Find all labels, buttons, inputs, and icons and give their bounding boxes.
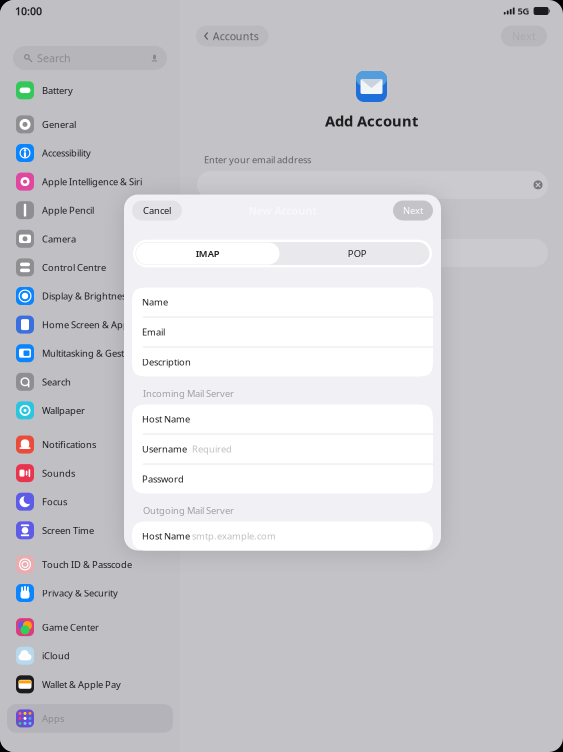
- staticText: Apps: [42, 712, 64, 725]
- button[interactable]: Display & Brightness: [7, 282, 173, 310]
- staticText: Display & Brightness: [42, 290, 130, 302]
- staticText: Search: [37, 51, 71, 65]
- button[interactable]: Next: [393, 200, 433, 220]
- button[interactable]: Apps: [7, 704, 173, 733]
- staticText: Wallet & Apple Pay: [42, 678, 121, 690]
- button[interactable]: Multitasking & Gestures: [7, 339, 173, 367]
- staticText: General: [42, 118, 76, 131]
- staticText: Email: [142, 326, 165, 338]
- staticText: Screen Time: [42, 524, 94, 536]
- button[interactable]: Wallpaper: [7, 396, 173, 425]
- staticText: Name: [142, 296, 168, 308]
- button[interactable]: Cancel: [132, 200, 182, 220]
- staticText: Focus: [42, 495, 67, 508]
- staticText: 10:00: [15, 4, 42, 18]
- button[interactable]: Privacy & Security: [7, 579, 173, 607]
- button[interactable]: iCloud: [7, 641, 173, 670]
- staticText: Enter your email address: [204, 153, 311, 166]
- staticText: Notifications: [42, 438, 96, 451]
- staticText: Host Name: [142, 530, 190, 542]
- button[interactable]: Notifications: [7, 430, 173, 459]
- staticText: POP: [348, 247, 367, 260]
- staticText: Apple Intelligence & Siri: [42, 175, 142, 188]
- staticText: Password: [142, 473, 184, 485]
- button[interactable]: Apple Intelligence & Siri: [7, 167, 173, 196]
- button[interactable]: Sounds: [7, 459, 173, 487]
- button[interactable]: Battery: [7, 76, 173, 105]
- button[interactable]: Clear text: [528, 175, 548, 195]
- staticText: Control Centre: [42, 261, 106, 274]
- staticText: Cancel: [143, 204, 171, 217]
- staticText: Sounds: [42, 467, 75, 479]
- staticText: smtp.example.com: [192, 530, 276, 542]
- staticText: Next: [403, 204, 423, 217]
- staticText: Incoming Mail Server: [143, 387, 234, 400]
- staticText: Add Account: [325, 111, 418, 130]
- staticText: Host Name: [142, 413, 190, 425]
- staticText: Next: [512, 29, 536, 43]
- staticText: Privacy & Security: [42, 587, 118, 599]
- button[interactable]: Control Centre: [7, 253, 173, 282]
- staticText: Apple Pencil: [42, 204, 94, 216]
- button[interactable]: Screen Time: [7, 516, 173, 545]
- button[interactable]: Next: [501, 25, 547, 46]
- staticText: Battery: [42, 84, 73, 96]
- button[interactable]: Search: [13, 46, 167, 70]
- staticText: Username: [142, 443, 187, 455]
- button[interactable]: Apple Pencil: [7, 196, 173, 224]
- staticText: iCloud: [42, 649, 70, 662]
- button[interactable]: Camera: [7, 224, 173, 253]
- staticText: Camera: [42, 233, 76, 245]
- button[interactable]: General: [7, 110, 173, 139]
- staticText: Accessibility: [42, 147, 91, 159]
- staticText: Wallpaper: [42, 404, 85, 417]
- button[interactable]: Home Screen & App Library: [7, 310, 173, 339]
- staticText: Home Screen & App Library: [42, 318, 162, 331]
- staticText: Touch ID & Passcode: [42, 558, 132, 571]
- staticText: Description: [142, 356, 191, 368]
- staticText: Search: [42, 376, 71, 388]
- staticText: Game Center: [42, 621, 99, 633]
- staticText: Required: [192, 443, 232, 455]
- staticText: 5G: [518, 5, 530, 17]
- button[interactable]: Accessibility: [7, 139, 173, 167]
- button[interactable]: Accounts: [196, 25, 269, 46]
- button[interactable]: Search: [7, 367, 173, 396]
- staticText: IMAP: [196, 247, 220, 260]
- button[interactable]: Focus: [7, 487, 173, 516]
- staticText: Outgoing Mail Server: [143, 504, 234, 517]
- button[interactable]: Wallet & Apple Pay: [7, 670, 173, 699]
- staticText: Accounts: [213, 29, 259, 43]
- button[interactable]: POP: [282, 239, 432, 267]
- button[interactable]: Game Center: [7, 613, 173, 641]
- button[interactable]: Touch ID & Passcode: [7, 550, 173, 579]
- button[interactable]: IMAP: [133, 239, 282, 267]
- staticText: Multitasking & Gestures: [42, 347, 143, 359]
